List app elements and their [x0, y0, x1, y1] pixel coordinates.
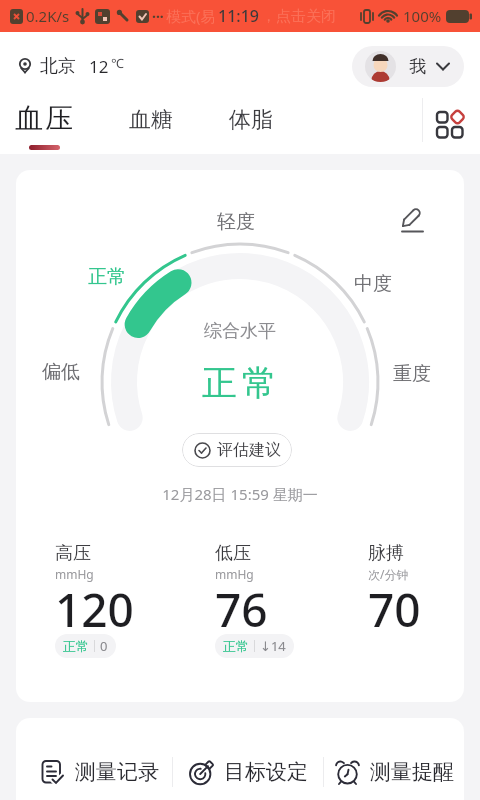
staticText: 评估建议	[217, 440, 281, 460]
button[interactable]: 测量记录	[26, 731, 172, 800]
button[interactable]: 血压	[14, 101, 74, 150]
staticText: 76	[215, 578, 268, 641]
staticText: mmHg	[55, 566, 94, 582]
staticText: 北京	[40, 55, 76, 78]
button[interactable]: 目标设定	[173, 731, 323, 800]
staticText: 0.2K/s	[26, 6, 70, 26]
staticText: ↓14	[260, 637, 286, 655]
staticText: 正常	[88, 265, 126, 289]
staticText: 低压	[215, 542, 251, 565]
button[interactable]: 测量提醒	[324, 731, 464, 800]
staticText: 偏低	[42, 360, 80, 384]
staticText: ℃	[111, 54, 124, 72]
button[interactable]: 血糖	[129, 106, 173, 134]
staticText: mmHg	[215, 566, 254, 582]
staticText: 重度	[393, 362, 431, 386]
staticText: 血压	[14, 101, 74, 136]
staticText: 0	[100, 637, 108, 655]
staticText: 70	[368, 578, 421, 641]
button[interactable]: 评估建议	[182, 433, 292, 467]
staticText: 综合水平	[16, 320, 464, 343]
staticText: 11:19	[218, 5, 259, 27]
staticText: 正常	[18, 361, 464, 405]
staticText: 目标设定	[224, 759, 308, 785]
button[interactable]	[436, 111, 464, 139]
staticText: 脉搏	[368, 542, 404, 565]
staticText: 轻度	[217, 210, 255, 234]
staticText: 我	[409, 56, 426, 77]
staticText: ，点击关闭	[261, 7, 336, 26]
staticText: 120	[55, 578, 134, 641]
staticText: 12	[89, 55, 109, 78]
staticText: 测量提醒	[370, 759, 454, 785]
staticText: 测量记录	[75, 759, 159, 785]
staticText: 正常	[63, 638, 89, 654]
button[interactable]	[398, 204, 428, 234]
button[interactable]: 我	[365, 46, 450, 87]
staticText: 12月28日 15:59 星期一	[16, 484, 464, 504]
staticText: 模式(易	[166, 6, 216, 26]
staticText: 100%	[403, 6, 442, 26]
staticText: 正常	[223, 638, 249, 654]
staticText: 中度	[354, 272, 392, 296]
staticText: 次/分钟	[368, 566, 409, 582]
staticText: 高压	[55, 542, 91, 565]
button[interactable]: 体脂	[229, 106, 273, 134]
staticText: ···	[152, 7, 164, 26]
